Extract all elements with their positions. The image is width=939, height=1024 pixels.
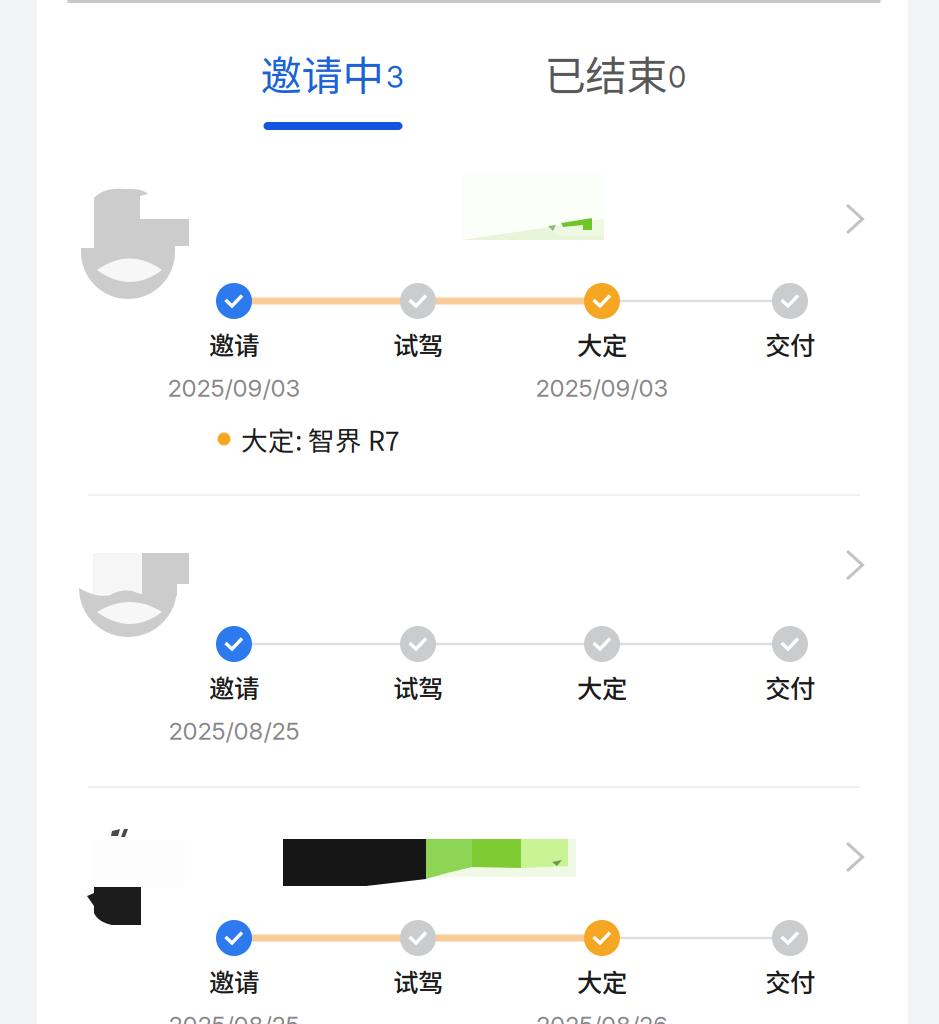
- staticText: 2025/08/26: [536, 1010, 668, 1024]
- staticText: 2025/09/03: [535, 373, 668, 402]
- staticText: 邀请: [209, 963, 259, 999]
- staticText: 交付: [765, 326, 815, 362]
- button[interactable]: 查看详情: [845, 549, 865, 581]
- staticText: 大定: [577, 669, 627, 705]
- staticText: 3: [386, 59, 404, 95]
- staticText: 邀请: [209, 326, 259, 362]
- staticText: 邀请中: [260, 43, 383, 103]
- staticText: 大定: [577, 326, 627, 362]
- staticText: 试驾: [393, 326, 443, 362]
- button[interactable]: 查看详情: [845, 841, 865, 873]
- button[interactable]: 已结束: [499, 30, 735, 154]
- button[interactable]: 邀请中: [215, 30, 451, 154]
- staticText: 2025/08/25: [168, 1010, 299, 1024]
- staticText: 2025/09/03: [167, 373, 300, 402]
- staticText: 交付: [765, 963, 815, 999]
- staticText: 已结束: [544, 43, 667, 103]
- staticText: 2025/08/25: [168, 716, 299, 745]
- button[interactable]: 查看详情: [845, 203, 865, 235]
- staticText: 交付: [765, 669, 815, 705]
- staticText: 试驾: [393, 669, 443, 705]
- staticText: 试驾: [393, 963, 443, 999]
- staticText: 邀请: [209, 669, 259, 705]
- staticText: 0: [668, 59, 686, 95]
- staticText: 大定: [577, 963, 627, 999]
- staticText: 大定: 智界 R7: [241, 420, 400, 458]
